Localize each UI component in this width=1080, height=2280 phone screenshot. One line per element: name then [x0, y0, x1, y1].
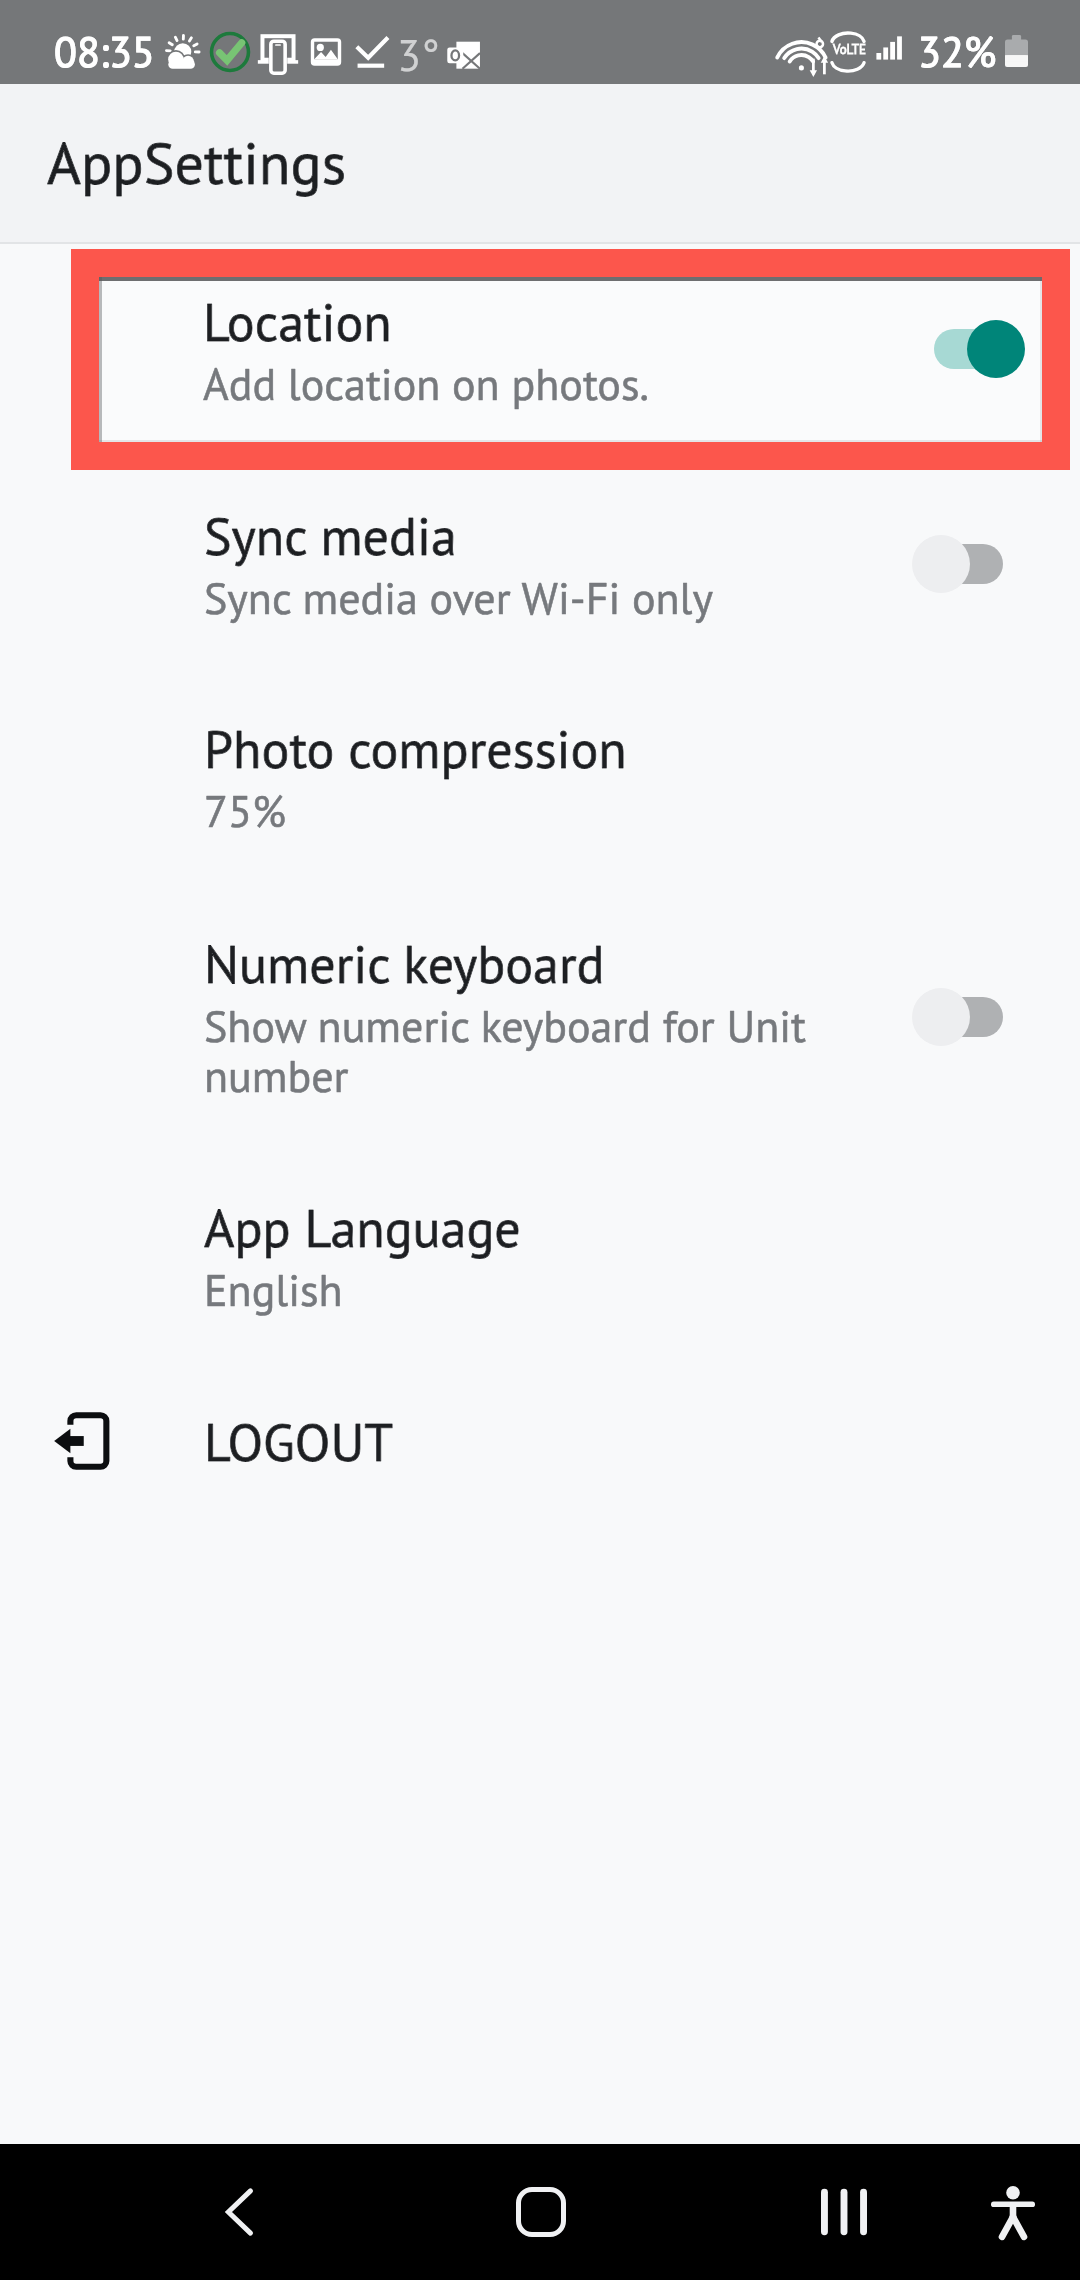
staticText: 3° [397, 26, 440, 83]
button[interactable]: Accessibility [945, 2144, 1080, 2280]
button[interactable]: Sync media [0, 489, 1080, 659]
staticText: Sync media over Wi-Fi only [204, 575, 713, 625]
staticText: Numeric keyboard [204, 933, 605, 997]
staticText: 75% [204, 788, 286, 838]
button[interactable]: Photo compression [0, 702, 1080, 872]
staticText: English [204, 1267, 343, 1317]
staticText: Sync media [204, 505, 457, 569]
staticText: Show numeric keyboard for Unit number [204, 1003, 884, 1103]
staticText: English [204, 1267, 343, 1317]
staticText: Show numeric keyboard for Unit number [204, 1003, 884, 1103]
staticText: AppSettings [47, 125, 347, 200]
button[interactable]: Location on [934, 320, 1025, 378]
button[interactable]: App Language [0, 1181, 1080, 1351]
staticText: 08:35 [54, 24, 155, 78]
button[interactable]: Back [170, 2144, 306, 2280]
staticText: 32% [918, 24, 997, 78]
staticText: Photo compression [204, 718, 627, 782]
staticText: Numeric keyboard [204, 933, 605, 997]
button[interactable]: Home [473, 2144, 609, 2280]
staticText: App Language [204, 1197, 521, 1261]
button[interactable]: LOGOUT [0, 1395, 1080, 1505]
button[interactable]: Toggle off [912, 988, 1003, 1046]
staticText: LOGOUT [204, 1411, 394, 1475]
staticText: Add location on photos. [203, 354, 649, 412]
staticText: VoLTE [833, 41, 866, 58]
staticText: Location [203, 292, 392, 354]
button[interactable]: Numeric keyboard [0, 917, 1080, 1132]
staticText: 08:35 [54, 24, 155, 78]
staticText: 32% [918, 24, 997, 78]
staticText: Photo compression [204, 718, 627, 782]
staticText: App Language [204, 1197, 521, 1261]
staticText: AppSettings [47, 125, 347, 200]
staticText: 75% [204, 788, 286, 838]
staticText: Sync media over Wi-Fi only [204, 575, 713, 625]
staticText: Location [203, 292, 392, 354]
button[interactable]: Recent apps [776, 2144, 912, 2280]
staticText: LOGOUT [204, 1411, 394, 1475]
button[interactable]: Location [99, 277, 1042, 442]
staticText: Sync media [204, 505, 457, 569]
button[interactable]: Toggle off [912, 535, 1003, 593]
staticText: Add location on photos. [203, 354, 649, 412]
